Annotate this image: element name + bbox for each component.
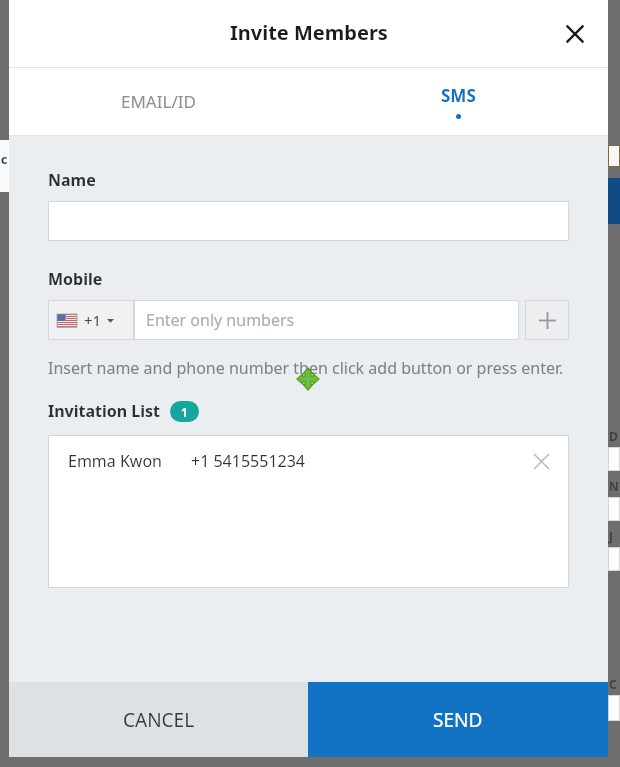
staticText: Emma Kwon bbox=[68, 450, 163, 472]
staticText: 1 bbox=[181, 404, 188, 420]
button[interactable]: Emma Kwon bbox=[48, 435, 569, 487]
staticText: EMAIL/ID bbox=[121, 90, 196, 113]
staticText: SMS bbox=[441, 84, 476, 107]
staticText: Invitation List bbox=[48, 400, 161, 422]
button[interactable]: Add bbox=[525, 300, 569, 340]
staticText: .c bbox=[0, 150, 8, 168]
button[interactable] bbox=[48, 201, 569, 241]
staticText: C bbox=[609, 676, 617, 692]
button[interactable]: Close bbox=[553, 12, 597, 56]
button[interactable]: EMAIL/ID bbox=[9, 68, 308, 135]
staticText: +1 5415551234 bbox=[191, 450, 305, 472]
button[interactable]: Remove Emma Kwon bbox=[527, 447, 555, 475]
staticText: Invite Members bbox=[230, 19, 388, 46]
staticText: CANCEL bbox=[123, 707, 195, 733]
button[interactable]: +1 bbox=[48, 300, 134, 340]
staticText: N bbox=[609, 478, 619, 494]
button[interactable]: SEND bbox=[308, 682, 608, 757]
staticText: Insert name and phone number then click … bbox=[48, 357, 564, 379]
button[interactable]: SMS bbox=[308, 68, 608, 135]
staticText: SEND bbox=[433, 707, 483, 733]
staticText: J bbox=[609, 528, 613, 544]
button[interactable]: Enter only numbers bbox=[134, 300, 519, 340]
staticText: Name bbox=[48, 169, 96, 191]
staticText: Enter only numbers bbox=[146, 309, 295, 331]
staticText: Mobile bbox=[48, 268, 103, 290]
staticText: D bbox=[609, 428, 618, 444]
staticText: +1 bbox=[84, 310, 102, 330]
button[interactable]: CANCEL bbox=[9, 682, 308, 757]
